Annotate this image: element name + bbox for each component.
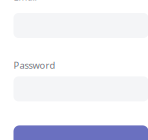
staticText: Email xyxy=(13,0,36,3)
button[interactable]: Sign In xyxy=(13,125,148,140)
staticText: Password xyxy=(13,59,55,71)
